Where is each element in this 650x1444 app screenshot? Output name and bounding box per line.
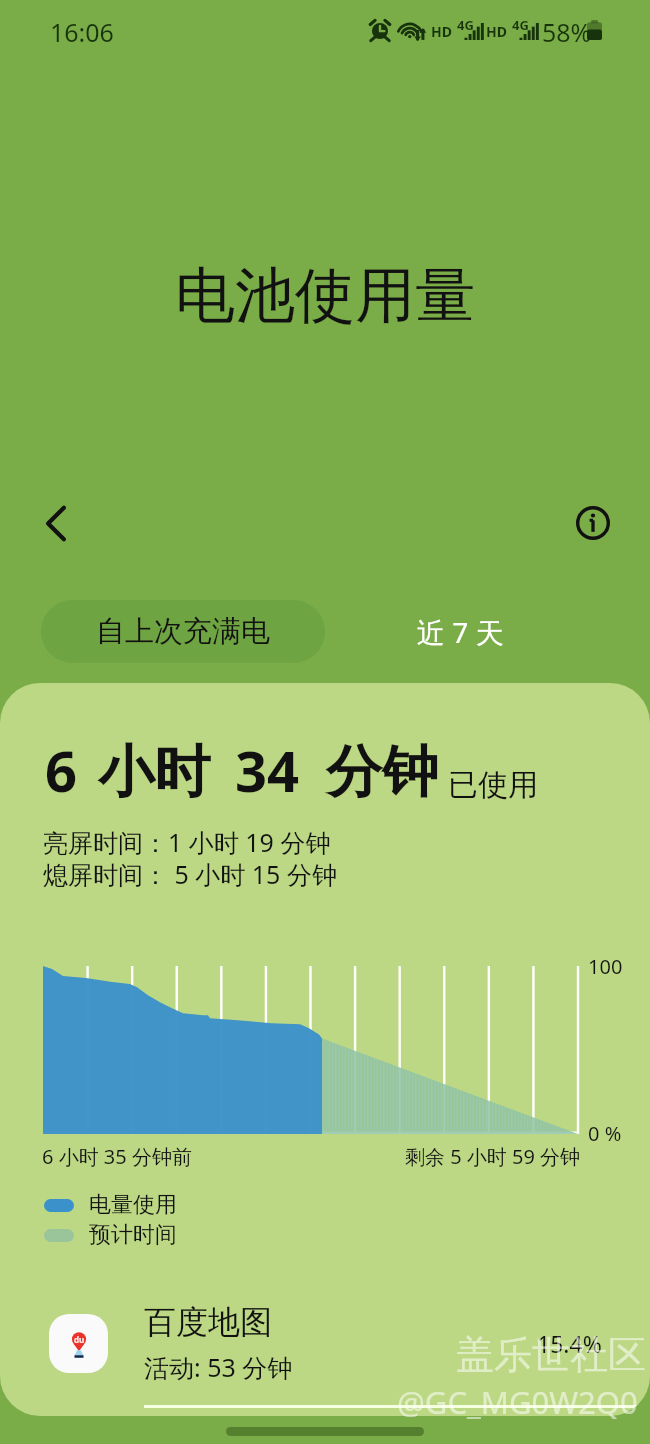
staticText: 0 % bbox=[588, 1120, 622, 1147]
staticText: 小时 bbox=[98, 737, 210, 808]
staticText: 活动: 53 分钟 bbox=[144, 1350, 293, 1384]
staticText: 百度地图 bbox=[144, 1302, 272, 1342]
staticText: 6 小时 35 分钟前 bbox=[42, 1143, 192, 1170]
staticText: 盖乐世社区 bbox=[456, 1331, 646, 1379]
staticText: 预计时间 bbox=[89, 1221, 177, 1249]
staticText: 4G bbox=[457, 16, 474, 34]
button[interactable]: Information bbox=[567, 497, 618, 548]
staticText: 电量使用 bbox=[89, 1191, 177, 1219]
button[interactable]: 自上次充满电 bbox=[41, 600, 325, 663]
staticText: 剩余 5 小时 59 分钟 bbox=[405, 1143, 581, 1170]
staticText: HD bbox=[431, 22, 452, 41]
staticText: du bbox=[74, 1334, 85, 1345]
staticText: HD bbox=[486, 22, 507, 41]
staticText: 16:06 bbox=[50, 15, 114, 49]
button[interactable]: Back bbox=[30, 497, 82, 549]
staticText: 34 bbox=[235, 732, 300, 808]
staticText: 亮屏时间：1 小时 19 分钟 bbox=[43, 825, 331, 859]
staticText: 近 7 天 bbox=[417, 613, 504, 651]
staticText: 分钟 bbox=[326, 737, 438, 808]
staticText: 6 bbox=[45, 732, 78, 808]
staticText: 电池使用量 bbox=[0, 258, 650, 334]
button[interactable]: du bbox=[0, 1296, 650, 1390]
button[interactable]: 近 7 天 bbox=[355, 600, 565, 663]
staticText: 58% bbox=[542, 15, 592, 49]
staticText: @GC_MG0W2Q0 bbox=[397, 1381, 638, 1423]
staticText: 15.4% bbox=[537, 1328, 602, 1359]
staticText: 自上次充满电 bbox=[96, 613, 270, 650]
staticText: 100 bbox=[588, 953, 623, 980]
staticText: 已使用 bbox=[448, 766, 538, 804]
staticText: 4G bbox=[512, 16, 529, 34]
staticText: 熄屏时间： 5 小时 15 分钟 bbox=[43, 857, 337, 891]
